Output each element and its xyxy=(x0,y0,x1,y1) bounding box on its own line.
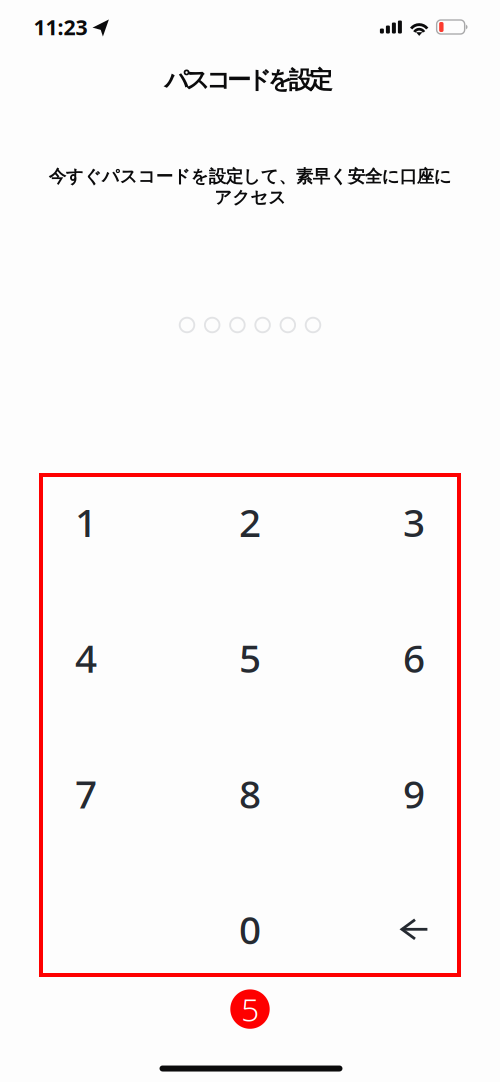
staticText: パスコードを設定 xyxy=(164,65,333,95)
staticText: 8 xyxy=(239,767,261,820)
button[interactable]: 5 xyxy=(168,590,332,726)
staticText: 1 xyxy=(75,496,97,548)
button[interactable]: 8 xyxy=(168,726,332,861)
button[interactable]: 1 xyxy=(4,454,168,590)
button[interactable]: 2 xyxy=(168,454,332,590)
staticText: 7 xyxy=(75,767,97,820)
staticText: 5 xyxy=(239,631,261,684)
button[interactable]: 3 xyxy=(332,454,496,590)
button[interactable]: 9 xyxy=(332,726,496,861)
button[interactable]: 0 xyxy=(168,861,332,997)
staticText: 今すぐパスコードを設定して、素早く安全に口座にアクセス xyxy=(48,166,451,208)
button[interactable]: Delete xyxy=(332,861,496,997)
staticText: 5 xyxy=(241,988,259,1030)
staticText: 6 xyxy=(403,631,425,684)
staticText: 11:23 xyxy=(33,13,87,41)
staticText: 2 xyxy=(239,496,261,548)
button[interactable]: 7 xyxy=(4,726,168,861)
staticText: 3 xyxy=(403,496,425,548)
button[interactable]: 6 xyxy=(332,590,496,726)
staticText: 4 xyxy=(75,631,97,684)
button[interactable]: 4 xyxy=(4,590,168,726)
staticText: 9 xyxy=(403,767,425,820)
staticText: 0 xyxy=(239,903,261,956)
